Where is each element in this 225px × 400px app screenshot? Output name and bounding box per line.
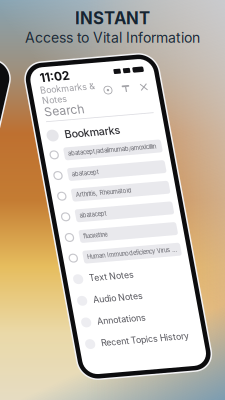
staticText: Search	[35, 107, 75, 121]
button[interactable]: abatacept/adalimumab/amoxicillin	[33, 147, 151, 168]
button[interactable]: Bookmarks	[33, 129, 151, 147]
staticText: abatacept	[51, 217, 78, 224]
staticText: abatacept/adalimumab/amoxicillin	[51, 154, 139, 161]
staticText: abatacept	[51, 175, 78, 182]
staticText: Recent Topics History	[49, 345, 137, 356]
staticText: Access to Vital Information	[25, 29, 200, 46]
button[interactable]: Human Immunodeficiency Virus (HIV) infec…	[33, 252, 151, 273]
staticText: Bookmarks	[51, 132, 107, 145]
button[interactable]: abatacept	[33, 168, 151, 189]
button[interactable]: Text Notes	[33, 273, 151, 295]
staticText: Human Immunodeficiency Virus (HIV) infec…	[51, 259, 141, 266]
staticText: Text Notes	[49, 279, 94, 290]
button[interactable]: Settings	[97, 92, 107, 102]
staticText: Audio Notes	[49, 301, 99, 312]
button[interactable]: Annotations	[33, 317, 151, 339]
button[interactable]: abatacept	[33, 210, 151, 231]
staticText: Bookmarks & Notes	[35, 87, 90, 108]
button[interactable]: fluoxetine	[33, 231, 151, 252]
button[interactable]: Audio Notes	[33, 295, 151, 317]
button[interactable]: Recent Topics History	[33, 339, 151, 361]
staticText: fluoxetine	[51, 238, 75, 245]
button[interactable]: Arthritis, Rheumatoid	[33, 189, 151, 210]
staticText: Arthritis, Rheumatoid	[51, 196, 107, 203]
staticText: INSTANT	[75, 8, 150, 28]
staticText: 11:02	[37, 72, 67, 87]
staticText: Annotations	[49, 323, 98, 334]
